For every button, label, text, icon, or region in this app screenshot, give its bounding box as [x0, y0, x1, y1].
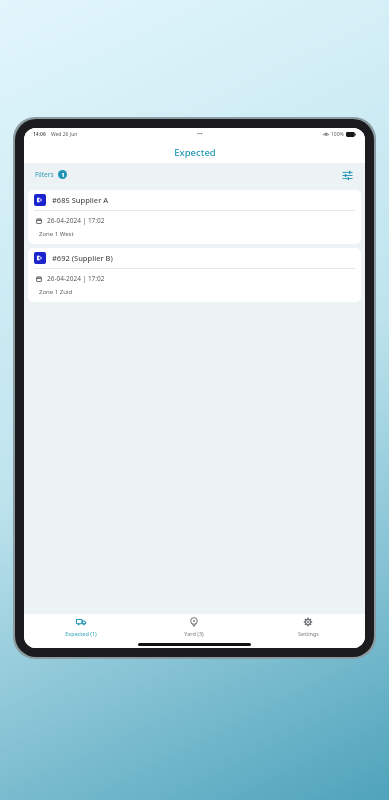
staticText: ••• [197, 131, 203, 138]
button[interactable]: Filter settings [338, 166, 356, 184]
staticText: Expected [174, 146, 216, 159]
staticText: 14:06 [33, 131, 46, 138]
staticText: 26-04-2024 | 17:02 [47, 216, 105, 225]
staticText: #685 Supplier A [52, 195, 109, 205]
button[interactable]: Settings [251, 615, 365, 639]
staticText: Yard (3) [184, 630, 204, 637]
staticText: 1 [61, 171, 65, 178]
staticText: Wed 26 Jun [51, 131, 78, 138]
button[interactable]: #692 (Supplier B) [28, 248, 361, 302]
button[interactable]: #685 Supplier A [28, 190, 361, 244]
staticText: Zone 1 West [39, 230, 74, 238]
staticText: #692 (Supplier B) [52, 253, 113, 263]
staticText: 100% [331, 131, 344, 138]
button[interactable]: Expected (1) [24, 615, 137, 639]
staticText: 26-04-2024 | 17:02 [47, 274, 105, 283]
staticText: Filters [35, 170, 54, 179]
button[interactable]: Yard (3) [137, 615, 251, 639]
staticText: Zone 1 Zuid [39, 288, 73, 296]
staticText: Settings [298, 630, 319, 637]
button[interactable]: Filters [33, 168, 69, 181]
staticText: Expected (1) [65, 630, 97, 637]
